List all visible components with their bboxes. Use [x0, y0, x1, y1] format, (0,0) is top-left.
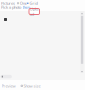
button[interactable]: Upload	[29, 9, 39, 14]
staticText: Show size	[23, 83, 40, 88]
staticText: One	[20, 1, 27, 6]
button[interactable]: One	[17, 1, 27, 6]
staticText: then	[22, 5, 29, 10]
staticText: Preview	[2, 83, 16, 88]
button[interactable]: then	[22, 5, 29, 10]
staticText: Pick a photo	[1, 5, 21, 10]
button[interactable]: Grid	[27, 1, 38, 6]
button[interactable]: Show size	[21, 83, 40, 88]
staticText: Grid	[30, 1, 38, 6]
staticText: Pictures	[1, 1, 15, 6]
staticText: Upload	[30, 6, 39, 17]
